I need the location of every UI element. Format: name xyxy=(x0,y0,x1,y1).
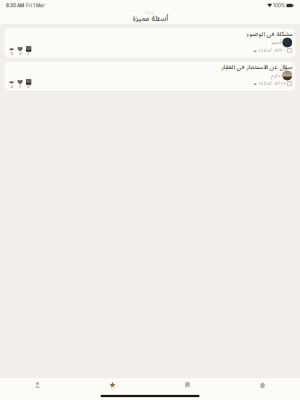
staticText: 8:30 AM xyxy=(6,3,24,8)
staticText: ١٤٤٥/٠٨/١٩ هـ xyxy=(253,80,286,87)
staticText: مشكلة في الوضوء xyxy=(246,29,292,39)
button[interactable]: Profile xyxy=(0,378,75,392)
button[interactable]: 5 xyxy=(4,28,295,57)
staticText: سؤال عن الاستثمار في العقار xyxy=(221,62,292,72)
staticText: 0 xyxy=(27,85,30,88)
staticText: 1 xyxy=(19,85,21,88)
staticText: ١٤٤٥/٠٨/٢٠ هـ xyxy=(253,47,286,54)
staticText: Fri 1 Mar xyxy=(24,3,45,8)
staticText: 2 xyxy=(11,85,13,88)
staticText: 5 xyxy=(11,52,13,55)
button[interactable]: Home xyxy=(225,378,300,392)
staticText: 3 xyxy=(19,52,21,55)
staticText: حازم xyxy=(271,71,281,79)
staticText: 1 xyxy=(28,52,30,55)
staticText: 100% xyxy=(272,3,285,8)
staticText: أحمد xyxy=(271,38,281,46)
button[interactable]: Saved xyxy=(150,378,225,392)
button[interactable]: Featured questions xyxy=(75,378,150,392)
staticText: أسئلة مميزة xyxy=(132,13,168,24)
button[interactable]: 2 xyxy=(4,61,295,90)
